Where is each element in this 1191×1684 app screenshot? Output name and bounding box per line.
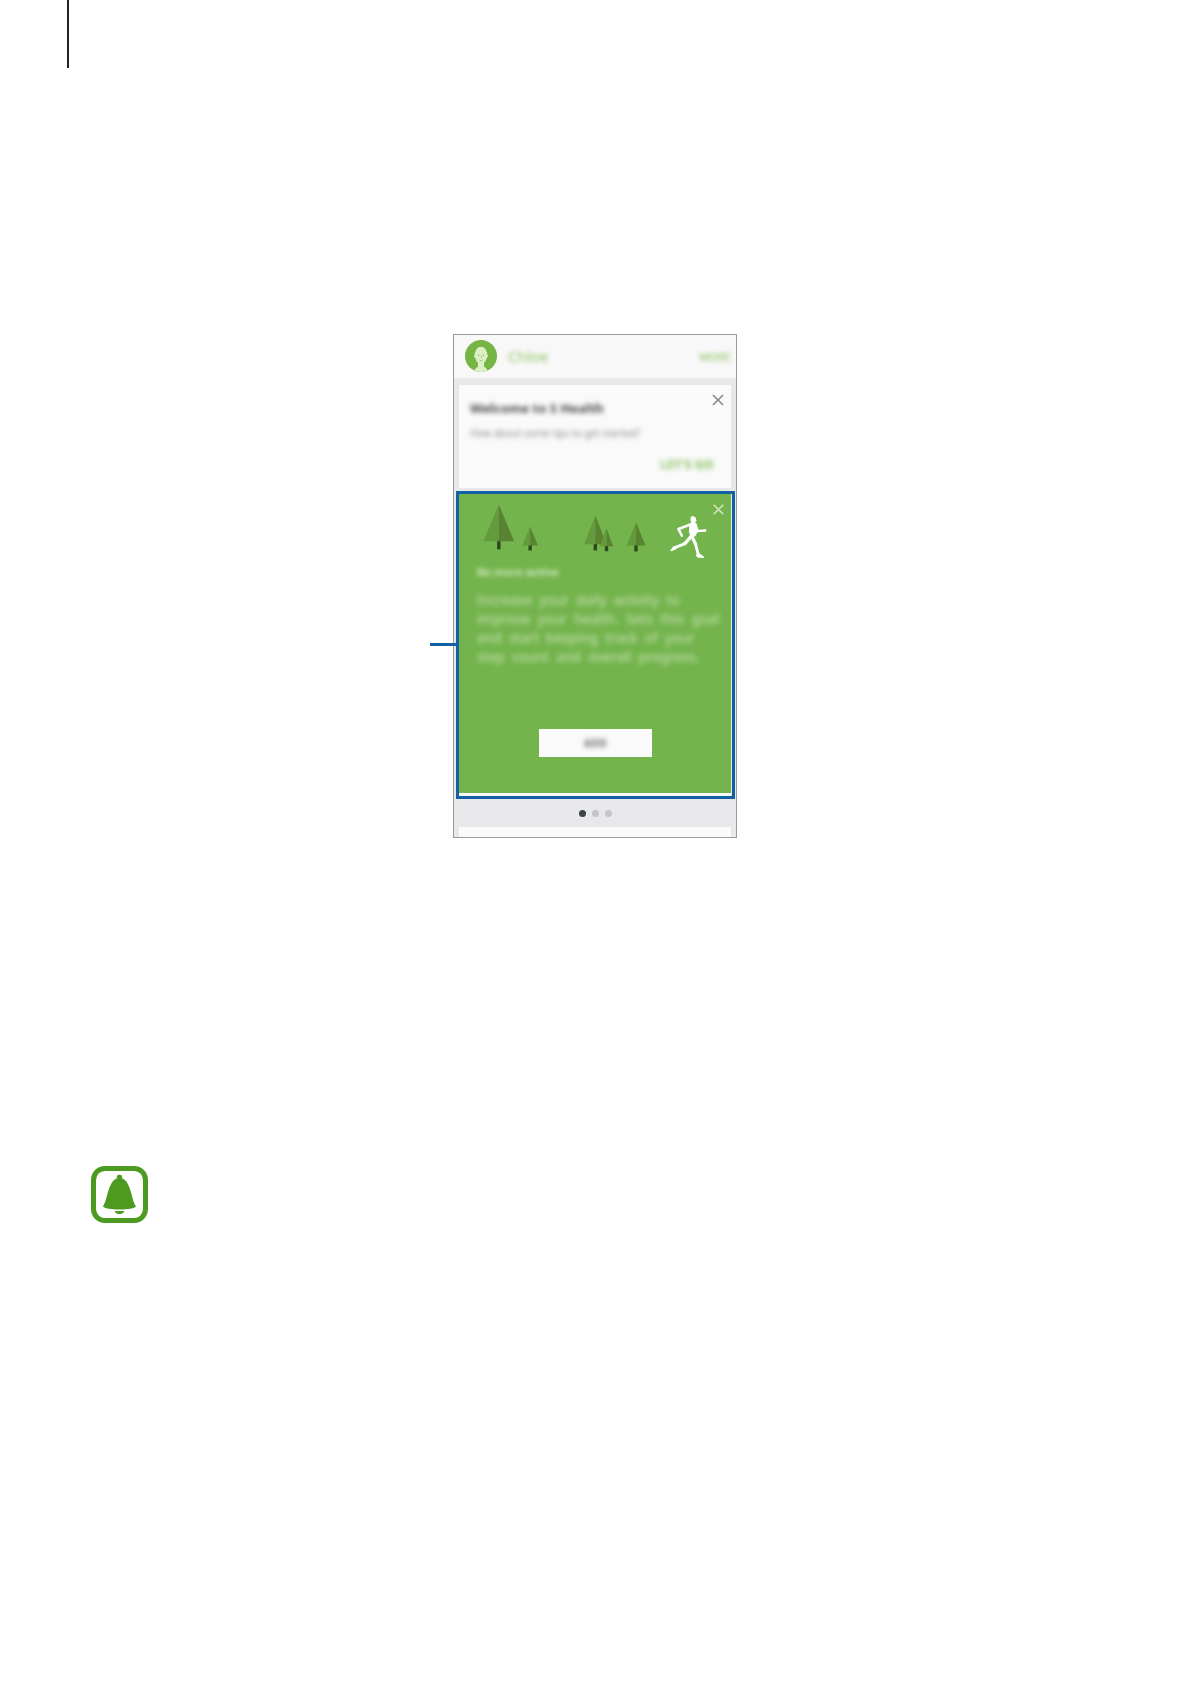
staticText: Welcome to S Health [470,399,604,417]
button[interactable]: ADD [539,729,652,757]
button[interactable]: Close [459,494,731,793]
button[interactable]: Welcome to S Health [459,385,731,488]
button[interactable]: LET'S GO [660,456,714,472]
staticText: ADD [584,736,608,750]
button[interactable]: Close [710,501,727,518]
button[interactable]: Chloe [453,334,737,378]
staticText: Increase your daily activity to improve … [477,590,720,666]
staticText: Be more active [477,564,559,579]
button[interactable]: Close [709,391,727,409]
staticText: LET'S GO [660,456,714,472]
staticText: MORE [699,349,731,364]
staticText: How about some tips to get started? [470,426,641,440]
staticText: Chloe [508,346,549,366]
